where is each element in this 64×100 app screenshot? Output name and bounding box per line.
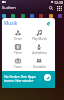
staticText: Aufnahme [32, 51, 47, 55]
staticText: Musik [4, 20, 18, 27]
button[interactable]: Shortcut [30, 14, 34, 18]
button[interactable]: Fotos [7, 56, 28, 70]
staticText: 12:30 [54, 0, 63, 4]
button[interactable]: Shortcut [39, 14, 43, 18]
button[interactable]: Suchen [2, 5, 16, 10]
button[interactable]: Apps [56, 5, 62, 11]
staticText: Kontakte [33, 65, 46, 69]
button[interactable]: Filme [7, 42, 28, 56]
staticText: Drive [14, 37, 22, 41]
button[interactable]: Shortcut [49, 14, 53, 18]
button[interactable]: Shortcut [21, 14, 25, 18]
button[interactable]: Shortcut [2, 14, 6, 18]
button[interactable]: Play Musik [28, 28, 50, 42]
button[interactable]: Cast [47, 20, 54, 27]
staticText: Filme [14, 51, 22, 55]
button[interactable]: Kontakte [28, 56, 50, 70]
button[interactable]: Search [48, 5, 54, 11]
staticText: Play Musik [32, 37, 47, 41]
staticText: Sie finden Ihre Apps immer hier wieder [4, 74, 36, 83]
button[interactable]: Aufnahme [28, 42, 50, 56]
button[interactable]: Sie finden Ihre Apps immer hier wieder [2, 71, 55, 88]
button[interactable]: Shortcut [58, 14, 62, 18]
staticText: Fotos [14, 65, 22, 69]
button[interactable]: Drive [7, 28, 28, 42]
button[interactable]: Shortcut [11, 14, 15, 18]
